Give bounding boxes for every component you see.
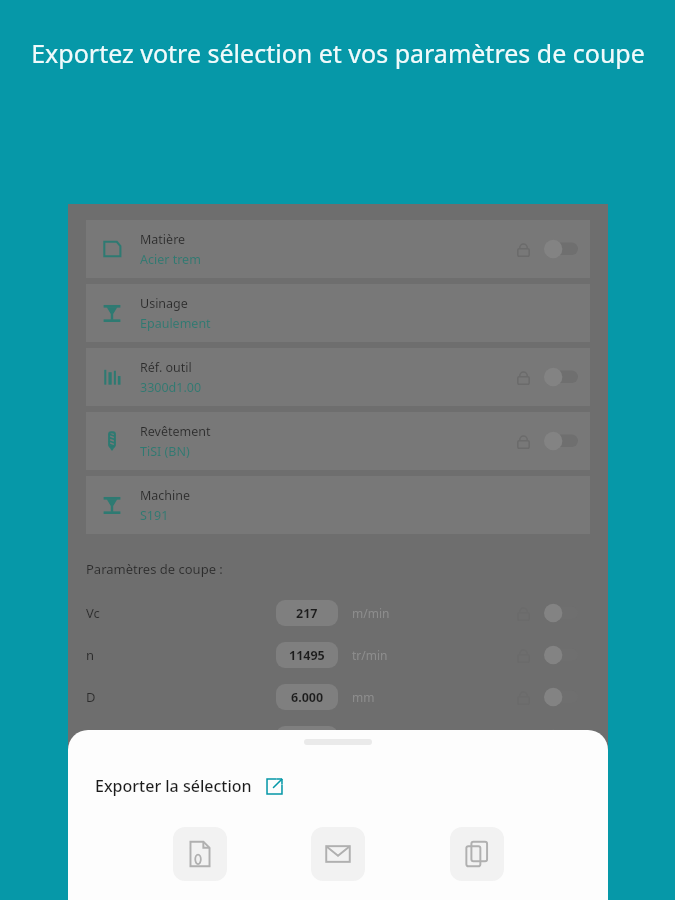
button[interactable]: n bbox=[86, 634, 590, 676]
staticText: Matière bbox=[140, 231, 186, 248]
staticText: mm bbox=[352, 731, 375, 747]
button[interactable]: Vc bbox=[86, 592, 590, 634]
staticText: Usinage bbox=[140, 295, 188, 312]
staticText: mm bbox=[352, 689, 375, 705]
button[interactable] bbox=[544, 367, 578, 387]
button[interactable] bbox=[544, 645, 578, 665]
staticText: 11495 bbox=[289, 647, 325, 664]
button[interactable]: Envoyer par e-mail bbox=[311, 827, 365, 881]
staticText: 217 bbox=[296, 605, 318, 622]
button[interactable]: Exporter en PDF bbox=[173, 827, 227, 881]
staticText: 0.050 bbox=[291, 731, 324, 748]
staticText: 3300d1.00 bbox=[140, 379, 202, 396]
other: Ouvrir bbox=[266, 778, 283, 795]
button[interactable]: f bbox=[86, 718, 590, 760]
button[interactable]: Matière bbox=[86, 220, 590, 278]
staticText: 6.000 bbox=[291, 689, 324, 706]
staticText: Machine bbox=[140, 487, 191, 504]
staticText: Paramètres de coupe : bbox=[86, 560, 223, 578]
staticText: Exporter la sélection bbox=[95, 775, 252, 797]
staticText: TiSI (BN) bbox=[140, 443, 190, 460]
staticText: Exportez votre sélection et vos paramètr… bbox=[31, 36, 645, 70]
button[interactable]: Machine bbox=[86, 476, 590, 534]
staticText: n bbox=[86, 646, 126, 664]
staticText: Acier trem bbox=[140, 251, 201, 268]
staticText: m/min bbox=[352, 605, 390, 621]
button[interactable]: Réf. outil bbox=[86, 348, 590, 406]
button[interactable] bbox=[544, 603, 578, 623]
staticText: Epaulement bbox=[140, 315, 211, 332]
staticText: Revêtement bbox=[140, 423, 211, 440]
button[interactable] bbox=[544, 239, 578, 259]
button[interactable]: Usinage bbox=[86, 284, 590, 342]
button[interactable]: Revêtement bbox=[86, 412, 590, 470]
button[interactable] bbox=[544, 431, 578, 451]
staticText: Vc bbox=[86, 604, 126, 622]
button[interactable]: Exporter la sélection bbox=[95, 775, 283, 797]
button[interactable] bbox=[544, 729, 578, 749]
staticText: D bbox=[86, 688, 126, 706]
button[interactable] bbox=[544, 687, 578, 707]
staticText: tr/min bbox=[352, 647, 388, 663]
button[interactable]: D bbox=[86, 676, 590, 718]
button[interactable]: Copier bbox=[450, 827, 504, 881]
staticText: Réf. outil bbox=[140, 359, 192, 376]
staticText: S191 bbox=[140, 507, 169, 524]
